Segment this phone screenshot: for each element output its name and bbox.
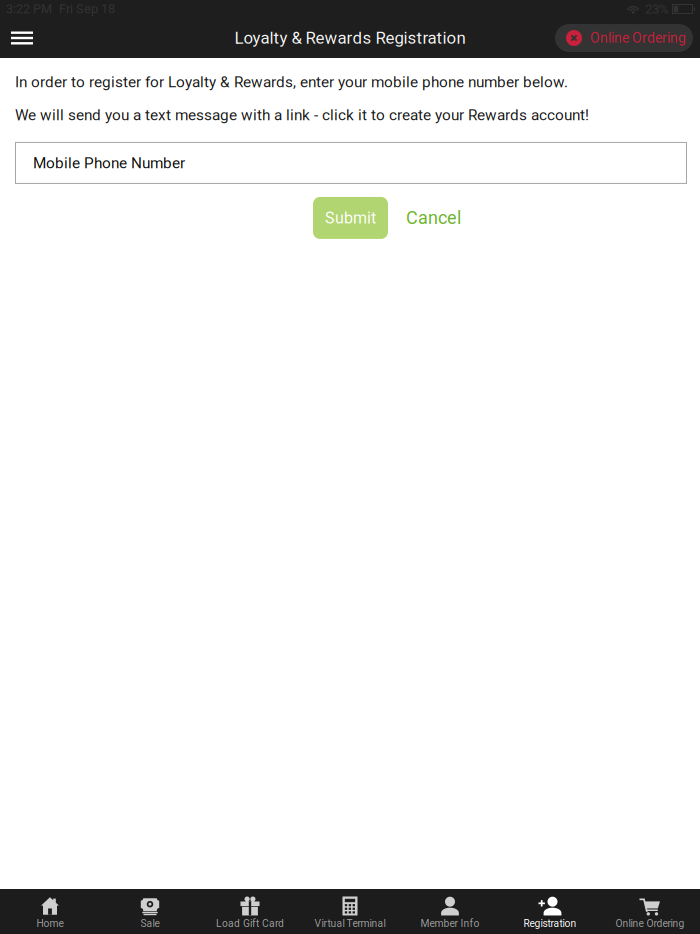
staticText: 23% bbox=[645, 1, 669, 17]
staticText: Home bbox=[36, 917, 63, 929]
staticText: We will send you a text message with a l… bbox=[15, 106, 589, 124]
staticText: Online Ordering bbox=[615, 917, 684, 929]
staticText: Member Info bbox=[420, 917, 479, 929]
staticText: Online Ordering bbox=[590, 30, 686, 46]
staticText: Load Gift Card bbox=[216, 917, 284, 929]
button[interactable]: Member Info bbox=[400, 889, 500, 934]
button[interactable]: Online Ordering bbox=[555, 24, 693, 52]
button[interactable]: Online Ordering bbox=[600, 889, 700, 934]
button[interactable]: Cancel bbox=[398, 197, 469, 239]
button[interactable]: Registration bbox=[500, 889, 600, 934]
staticText: Fri Sep 18 bbox=[59, 2, 115, 16]
button[interactable]: Virtual Terminal bbox=[300, 889, 400, 934]
staticText: In order to register for Loyalty & Rewar… bbox=[15, 73, 568, 91]
button[interactable]: Sale bbox=[100, 889, 200, 934]
staticText: Registration bbox=[523, 917, 576, 929]
button[interactable]: Submit bbox=[313, 197, 388, 239]
staticText: Submit bbox=[325, 209, 376, 227]
button[interactable]: Menu bbox=[0, 18, 44, 58]
staticText: Sale bbox=[140, 917, 159, 929]
button[interactable]: Home bbox=[0, 889, 100, 934]
staticText: 3:22 PM bbox=[6, 2, 52, 16]
staticText: Mobile Phone Number bbox=[33, 154, 185, 172]
staticText: Loyalty & Rewards Registration bbox=[234, 28, 465, 48]
staticText: Cancel bbox=[406, 207, 461, 228]
button[interactable]: Load Gift Card bbox=[200, 889, 300, 934]
staticText: Virtual Terminal bbox=[314, 917, 385, 929]
